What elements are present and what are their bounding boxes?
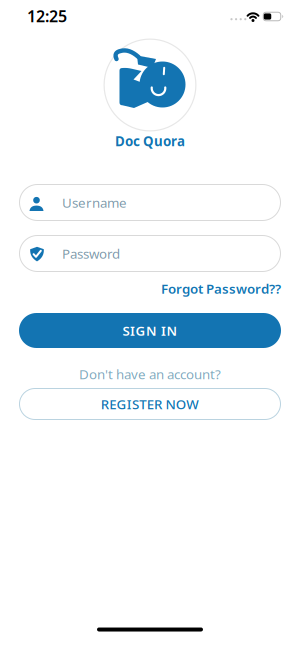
staticText: REGISTER NOW [101,395,199,413]
button[interactable]: SIGN IN [19,313,281,348]
button[interactable]: Password [19,235,281,272]
staticText: SIGN IN [122,322,177,339]
staticText: Doc Quora [115,132,185,150]
staticText: Forgot Password?? [161,280,281,297]
button[interactable]: Username [19,184,281,221]
staticText: Don't have an account? [79,365,221,383]
staticText: 12:25 [27,5,67,27]
staticText: Username [62,194,127,211]
staticText: Password [62,245,120,262]
button[interactable]: REGISTER NOW [19,388,281,420]
button[interactable]: Forgot Password?? [161,280,281,297]
